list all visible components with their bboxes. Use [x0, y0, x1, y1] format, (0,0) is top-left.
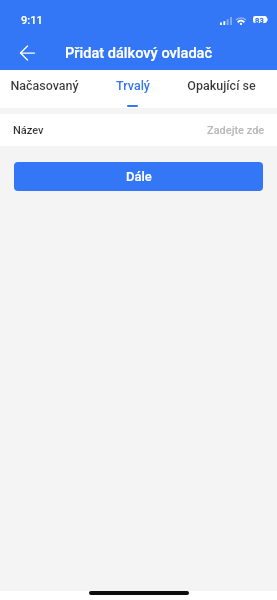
staticText: Dále — [126, 169, 152, 184]
button[interactable]: Opakující se — [177, 70, 266, 108]
button[interactable]: Dále — [14, 162, 263, 191]
staticText: Opakující se — [187, 78, 256, 93]
button[interactable]: Back — [10, 36, 44, 70]
staticText: 83 — [255, 16, 265, 23]
button[interactable]: Trvalý — [88, 70, 177, 108]
staticText: Zadejte zde — [207, 124, 265, 137]
button[interactable]: Načasovaný — [0, 70, 88, 108]
staticText: Název — [13, 124, 44, 137]
staticText: Načasovaný — [10, 78, 79, 93]
staticText: Trvalý — [116, 78, 150, 93]
staticText: 9:11 — [21, 14, 43, 27]
staticText: Přidat dálkový ovladač — [65, 44, 213, 61]
button[interactable]: Název — [0, 114, 277, 146]
